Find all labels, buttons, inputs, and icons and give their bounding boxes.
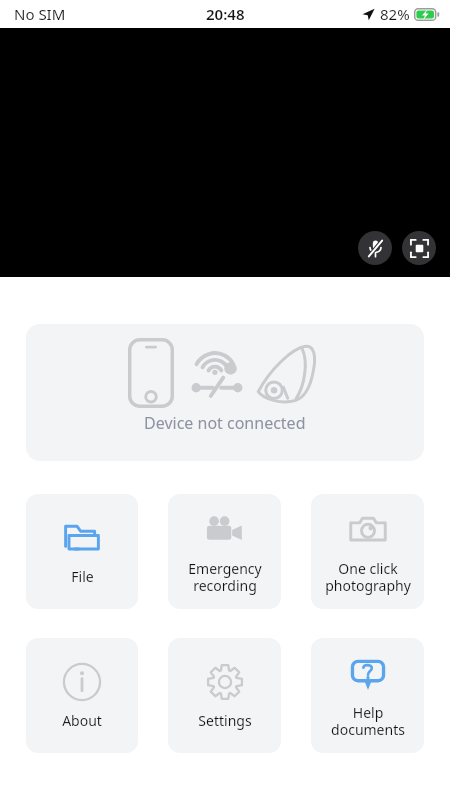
button[interactable]: About [26, 638, 138, 753]
staticText: File [71, 567, 94, 586]
staticText: About [62, 711, 102, 730]
button[interactable]: One click photography [311, 494, 424, 609]
staticText: 20:48 [206, 4, 245, 24]
button[interactable]: Settings [168, 638, 281, 753]
button[interactable]: Device not connected [26, 324, 424, 461]
staticText: No SIM [14, 4, 66, 24]
staticText: Help documents [331, 703, 405, 739]
button[interactable]: Emergency recording [168, 494, 281, 609]
button[interactable]: Help documents [311, 638, 424, 753]
button[interactable]: File [26, 494, 138, 609]
staticText: 82% [380, 4, 410, 24]
staticText: Settings [198, 711, 252, 730]
staticText: Device not connected [144, 412, 306, 434]
staticText: One click photography [325, 559, 411, 595]
button[interactable]: Microphone muted [358, 231, 392, 265]
button[interactable]: Fullscreen [402, 231, 436, 265]
staticText: Emergency recording [188, 559, 262, 595]
